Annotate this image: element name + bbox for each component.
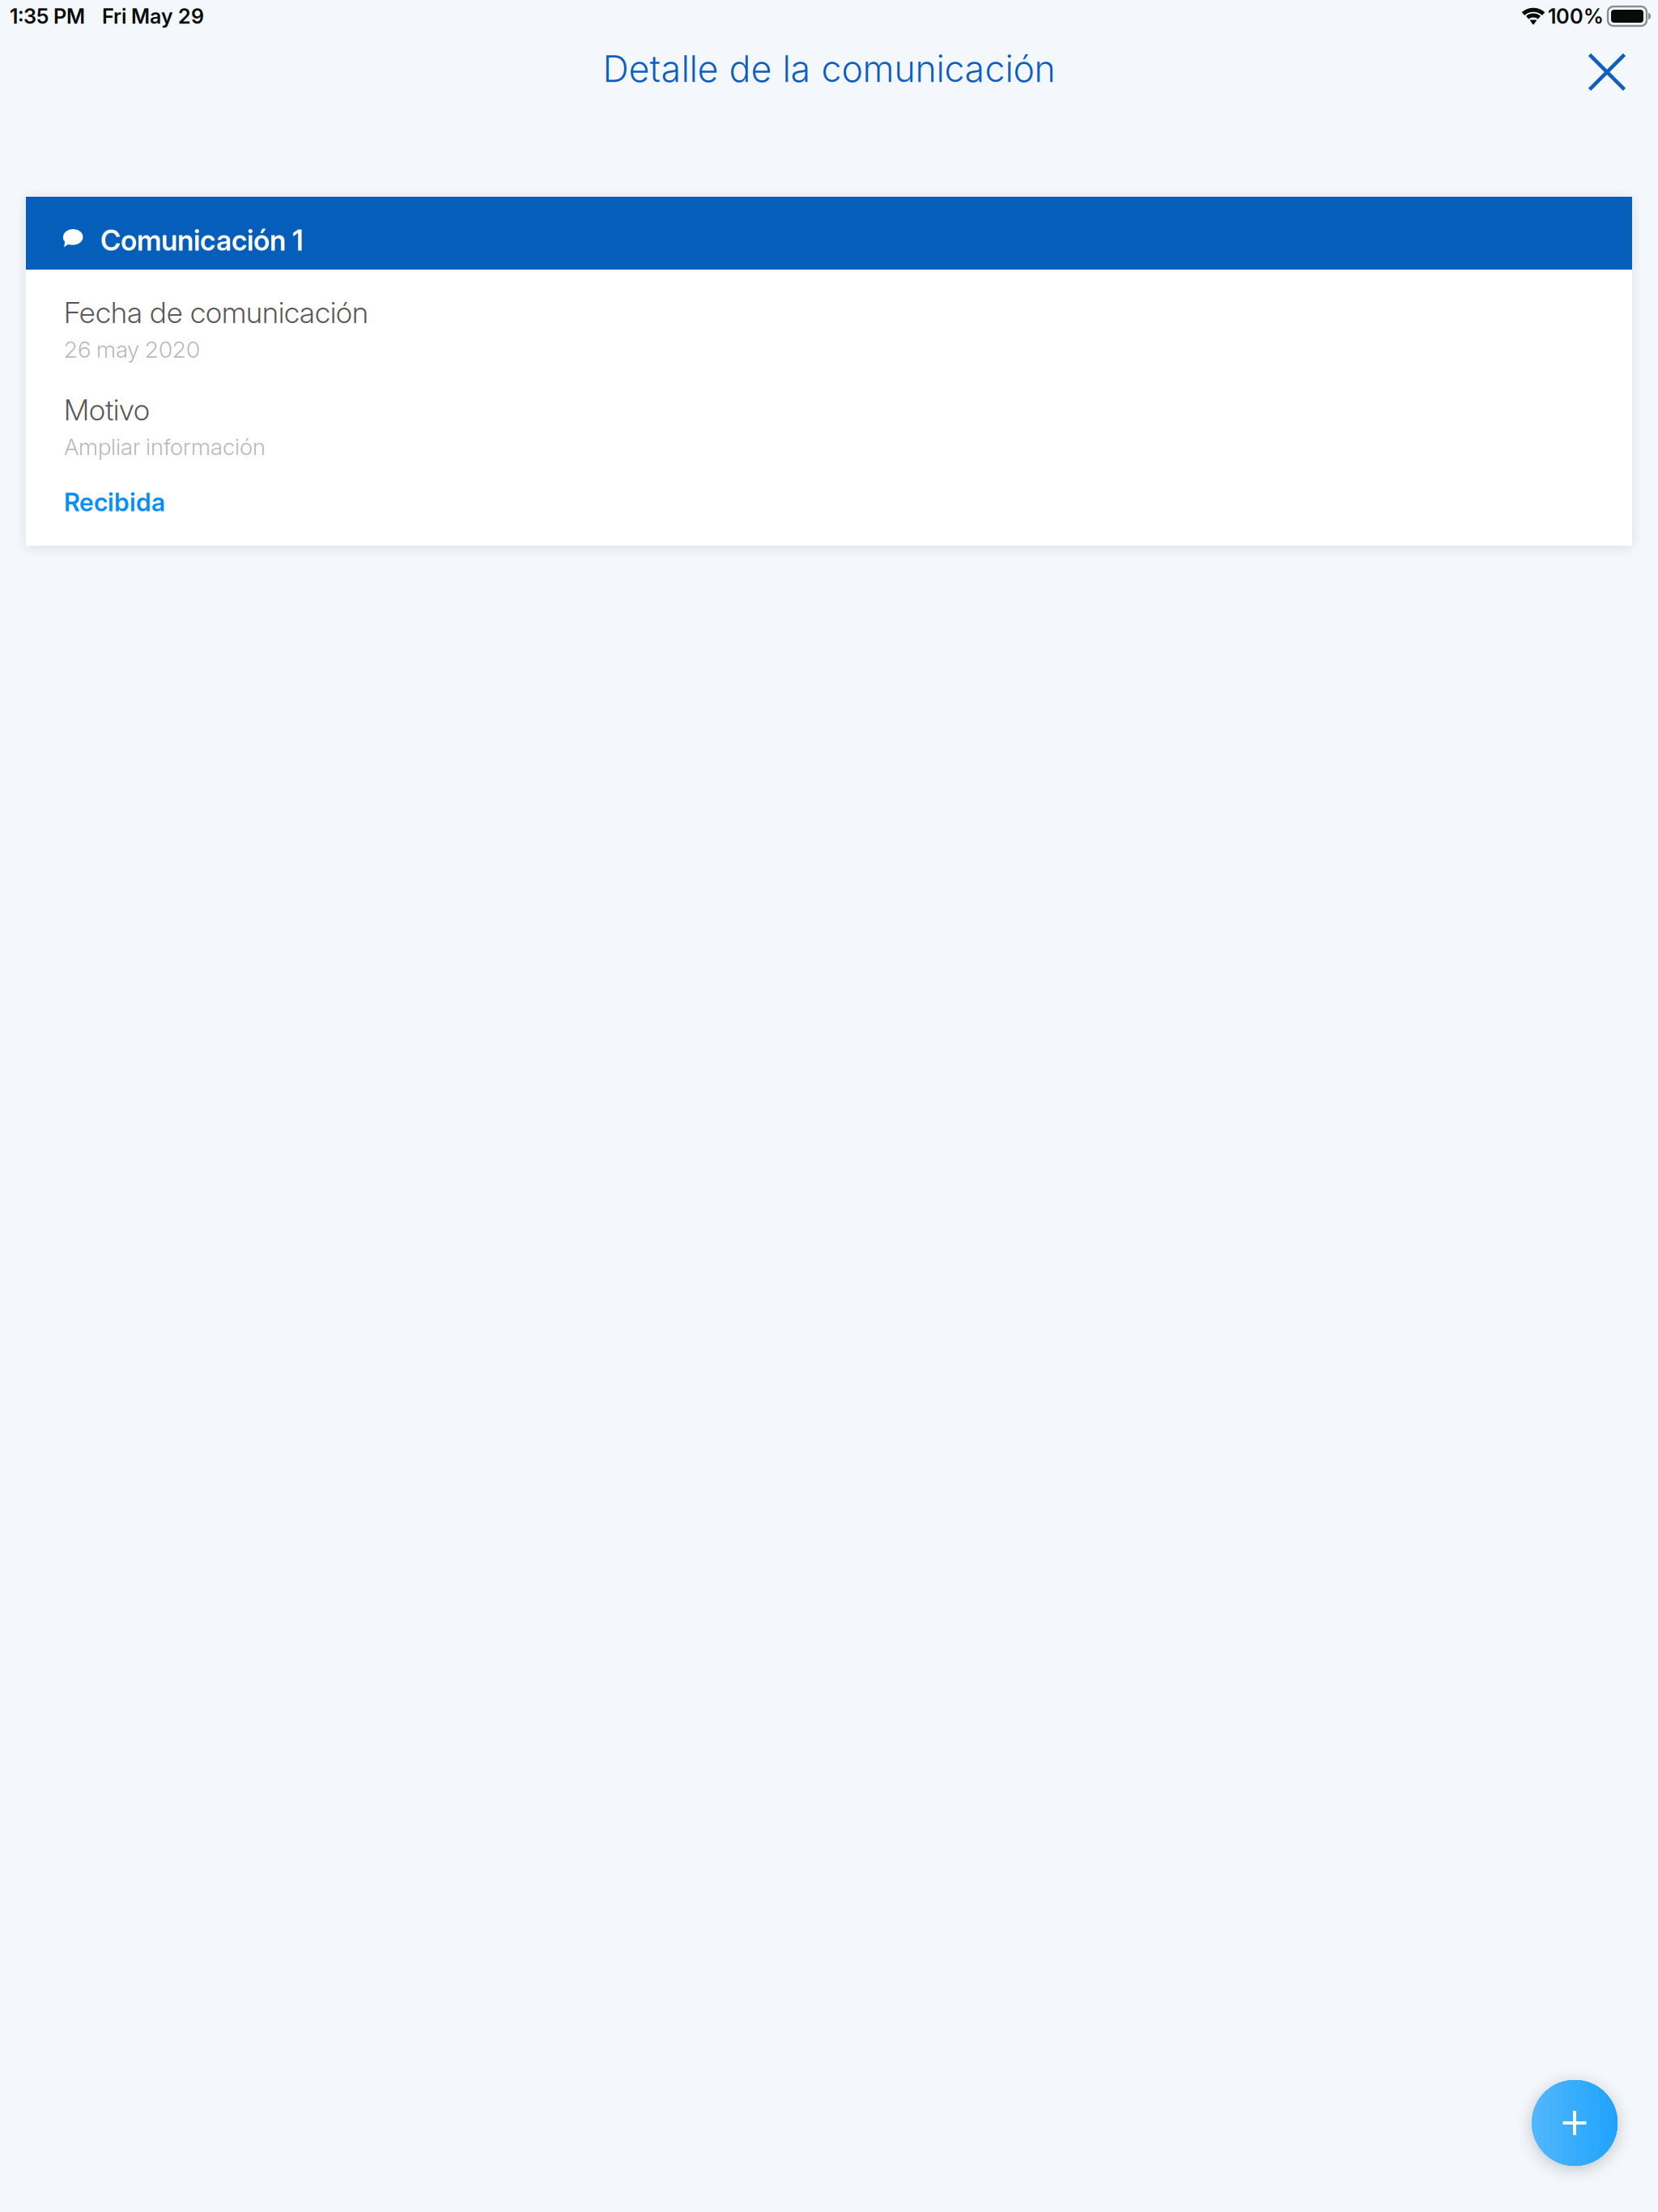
button[interactable]: Recibida — [64, 487, 165, 517]
button[interactable]: Cerrar — [1571, 36, 1643, 108]
staticText: Motivo — [64, 392, 150, 428]
button[interactable]: Añadir comunicación — [1532, 2080, 1618, 2166]
staticText: Comunicación 1 — [100, 223, 304, 257]
staticText: Ampliar información — [64, 433, 266, 461]
staticText: 26 may 2020 — [64, 336, 200, 363]
staticText: Fri May 29 — [102, 4, 204, 29]
staticText: 100% — [1548, 4, 1604, 29]
button[interactable]: Comunicación 1 — [26, 197, 1632, 270]
staticText: Fecha de comunicación — [64, 295, 368, 330]
staticText: 1:35 PM — [10, 4, 85, 29]
staticText: Detalle de la comunicación — [603, 47, 1055, 91]
staticText: Recibida — [64, 487, 165, 517]
